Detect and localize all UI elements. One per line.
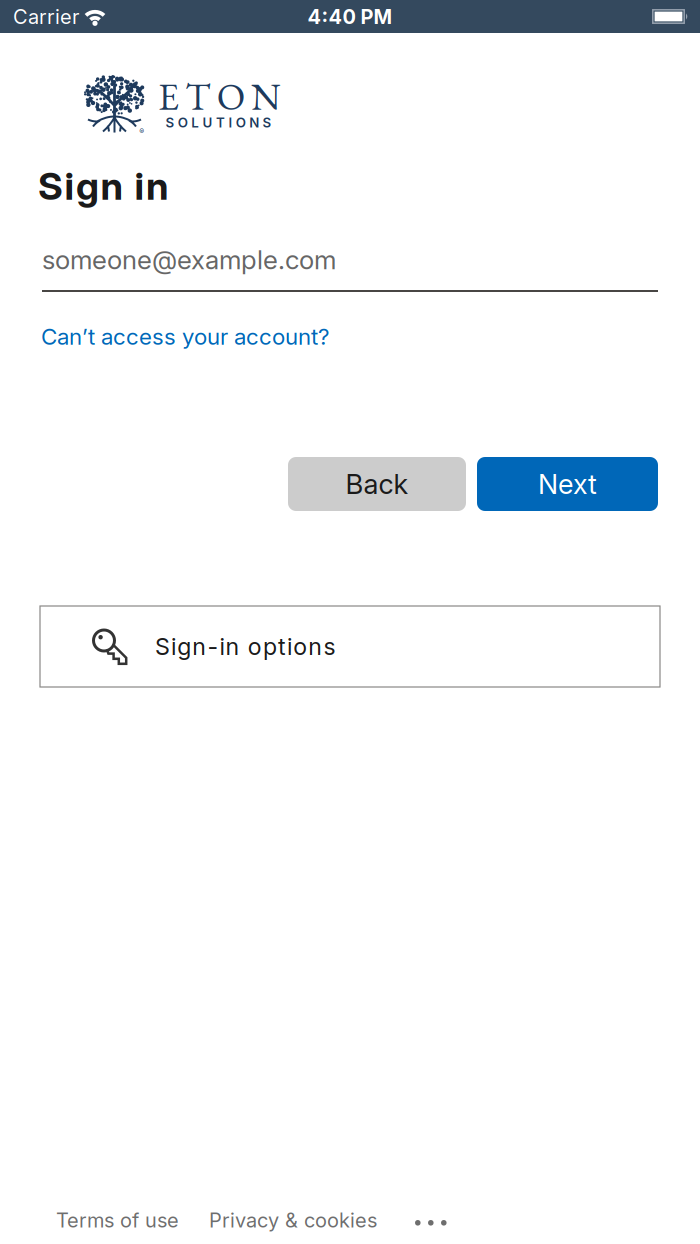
- staticText: O: [217, 72, 245, 121]
- staticText: Sign-in options: [155, 632, 335, 661]
- staticText: S: [263, 115, 272, 131]
- staticText: Privacy & cookies: [209, 1208, 377, 1232]
- staticText: Terms of use: [56, 1208, 179, 1232]
- staticText: S: [165, 115, 174, 131]
- staticText: N: [251, 72, 281, 121]
- staticText: N: [249, 115, 259, 131]
- button[interactable]: More options: [415, 1220, 447, 1226]
- staticText: Can’t access your account?: [41, 323, 329, 350]
- button[interactable]: someone@example.com: [42, 244, 336, 275]
- staticText: O: [178, 115, 188, 131]
- staticText: Carrier: [13, 4, 79, 29]
- staticText: T: [216, 115, 225, 131]
- button[interactable]: Terms of use: [56, 1208, 179, 1232]
- button[interactable]: Sign-in options: [40, 606, 660, 687]
- staticText: L: [191, 115, 199, 131]
- staticText: I: [228, 115, 232, 131]
- staticText: Sign in: [38, 163, 169, 209]
- staticText: 4:40 PM: [307, 4, 392, 29]
- button[interactable]: Privacy & cookies: [209, 1208, 377, 1232]
- button[interactable]: Next: [477, 457, 658, 511]
- button[interactable]: Back: [288, 457, 466, 511]
- staticText: O: [236, 115, 246, 131]
- staticText: Next: [538, 467, 597, 501]
- staticText: ®: [139, 127, 144, 136]
- staticText: E: [158, 72, 179, 121]
- staticText: someone@example.com: [42, 244, 336, 275]
- staticText: Back: [345, 467, 408, 501]
- staticText: T: [185, 72, 210, 121]
- staticText: U: [203, 115, 213, 131]
- button[interactable]: Can’t access your account?: [41, 323, 329, 350]
